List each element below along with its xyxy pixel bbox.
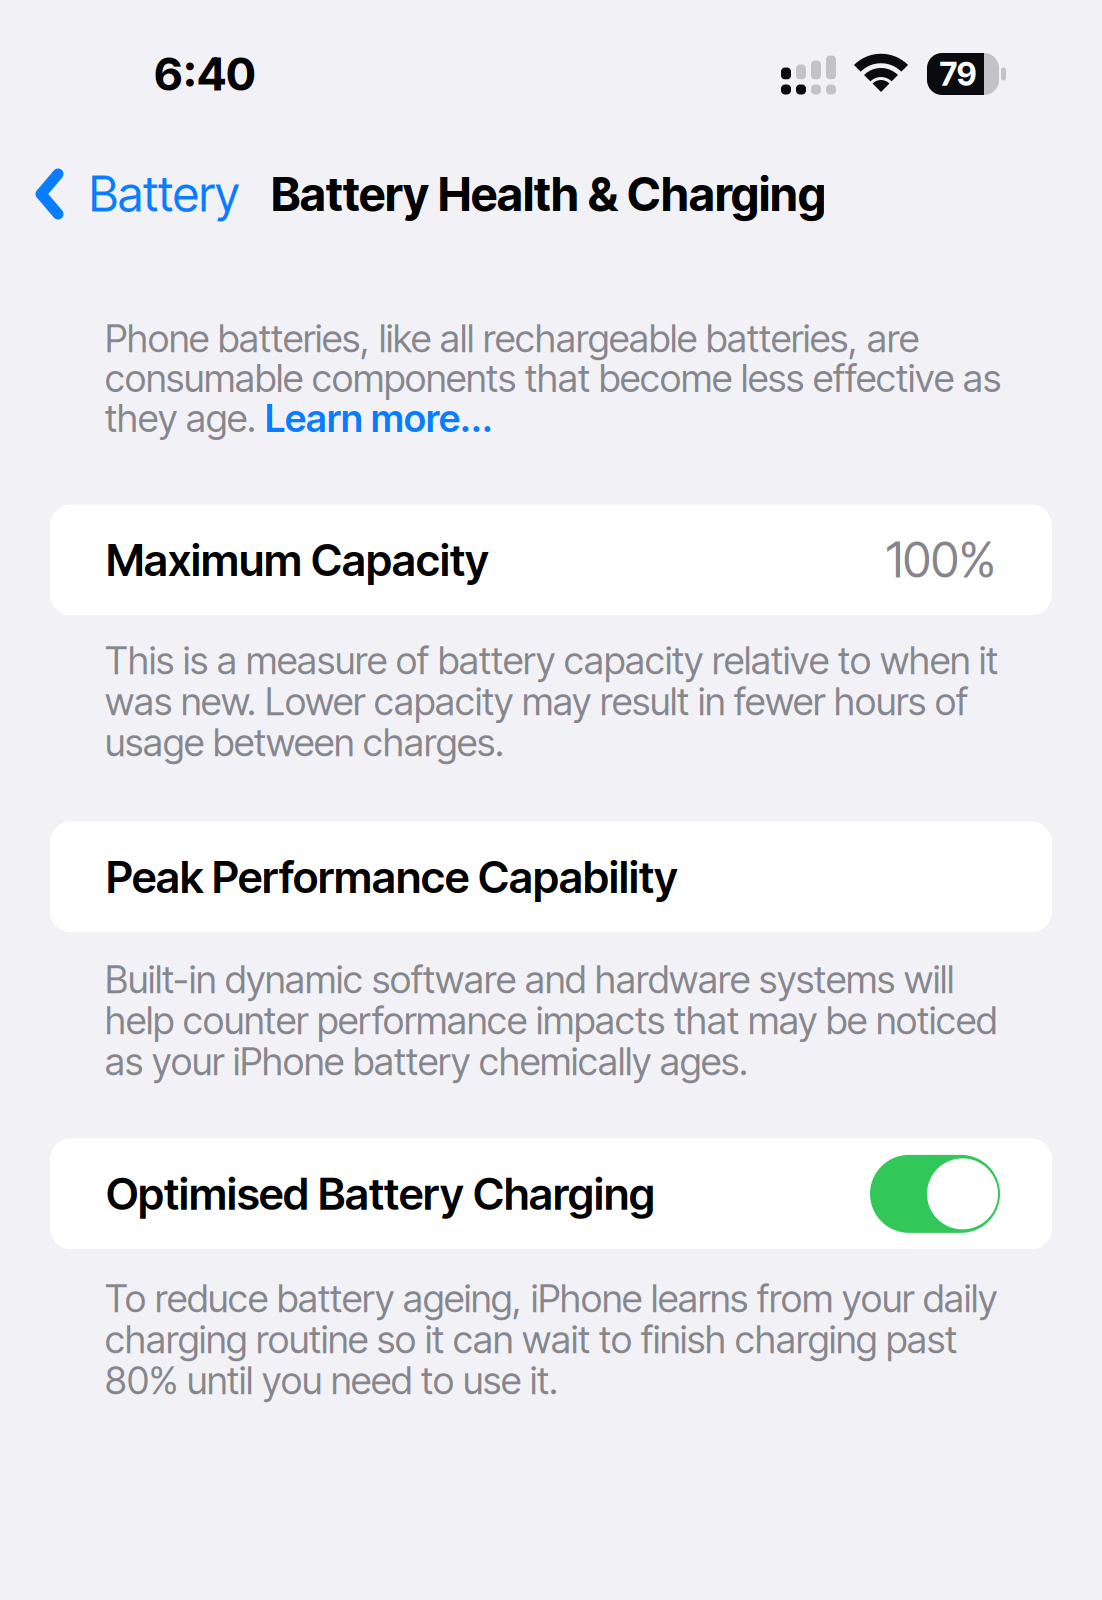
- staticText: Battery: [89, 165, 239, 223]
- button[interactable]: Peak Performance Capability: [50, 821, 1052, 932]
- staticText: This is a measure of battery capacity re…: [105, 637, 998, 765]
- staticText: Built-in dynamic software and hardware s…: [105, 956, 997, 1084]
- staticText: Optimised Battery Charging: [106, 1167, 655, 1220]
- staticText: 79: [939, 55, 976, 93]
- staticText: Phone batteries, like all rechargeable b…: [105, 316, 1001, 440]
- staticText: Maximum Capacity: [106, 533, 489, 587]
- staticText: To reduce battery ageing, iPhone learns …: [105, 1275, 997, 1403]
- staticText: 6:40: [154, 47, 256, 101]
- staticText: 100%: [886, 531, 996, 589]
- staticText: Peak Performance Capability: [106, 850, 678, 903]
- staticText: Battery Health & Charging: [271, 166, 826, 222]
- button[interactable]: Maximum Capacity: [50, 504, 1052, 615]
- button[interactable]: Battery: [0, 165, 249, 223]
- button[interactable]: Optimised Battery Charging: [50, 1138, 1052, 1249]
